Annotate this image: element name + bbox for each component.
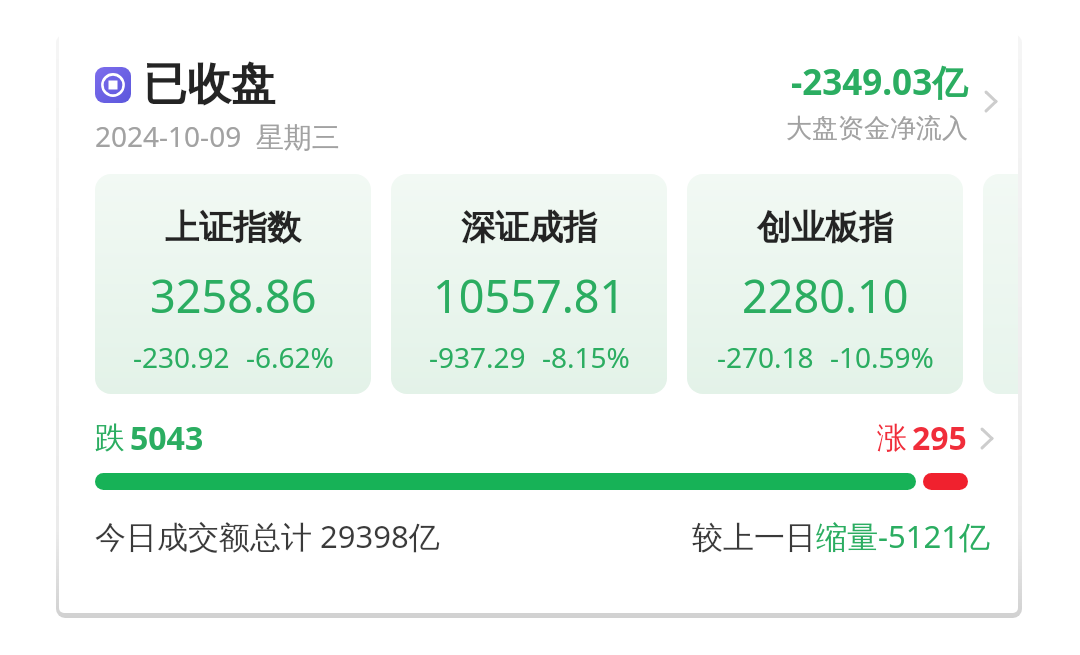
staticText: 深证成指 <box>461 206 597 249</box>
staticText: 跌 <box>95 419 125 457</box>
staticText: 3258.86 <box>150 265 317 326</box>
button[interactable]: 跌 <box>59 416 1018 490</box>
staticText: 2280.10 <box>742 265 909 326</box>
staticText: 5043 <box>130 416 204 460</box>
staticText: 295 <box>912 416 967 460</box>
staticText: 大盘资金净流入 <box>786 112 968 145</box>
staticText: 10557.81 <box>433 265 626 326</box>
staticText: 今日成交额总计 29398亿 <box>95 515 440 557</box>
staticText: -270.18 <box>717 338 814 376</box>
other: Market status <box>95 67 131 103</box>
staticText: -937.29 <box>429 338 526 376</box>
staticText: -8.15% <box>542 338 630 376</box>
staticText: 已收盘 <box>143 57 275 112</box>
staticText: -230.92 <box>133 338 230 376</box>
button[interactable]: 创业板指 <box>687 174 963 394</box>
staticText: 涨 <box>877 419 907 457</box>
staticText: 创业板指 <box>757 206 893 249</box>
button[interactable]: -2349.03亿 <box>786 57 998 145</box>
button[interactable]: 深证成指 <box>391 174 667 394</box>
staticText: 较上一日缩量-5121亿 <box>692 515 990 557</box>
staticText: -2349.03亿 <box>791 58 968 106</box>
staticText: 2024-10-09 星期三 <box>95 117 340 155</box>
staticText: -10.59% <box>830 338 934 376</box>
button[interactable]: 上证指数 <box>95 174 371 394</box>
button[interactable] <box>983 174 1018 394</box>
staticText: 上证指数 <box>165 206 301 249</box>
staticText: -6.62% <box>246 338 334 376</box>
